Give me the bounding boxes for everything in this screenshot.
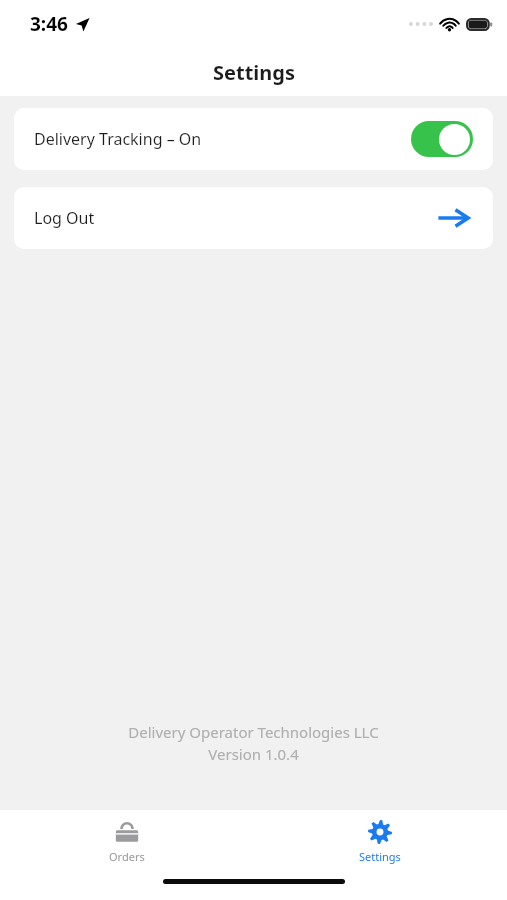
- staticText: Log Out: [34, 207, 95, 229]
- staticText: Settings: [213, 59, 295, 86]
- staticText: Settings: [359, 849, 401, 864]
- staticText: Orders: [109, 849, 145, 864]
- staticText: Delivery Tracking – On: [34, 128, 202, 150]
- button[interactable]: Delivery tracking toggle, on: [411, 121, 473, 157]
- staticText: Delivery Operator Technologies LLC: [128, 722, 379, 742]
- button[interactable]: Log Out: [14, 187, 493, 249]
- button[interactable]: Delivery Tracking – On: [14, 108, 493, 170]
- button[interactable]: Log out: [437, 201, 471, 235]
- staticText: 3:46: [30, 11, 68, 37]
- button[interactable]: Settings: [325, 812, 435, 870]
- button[interactable]: Orders: [72, 812, 182, 870]
- staticText: Version 1.0.4: [208, 744, 299, 764]
